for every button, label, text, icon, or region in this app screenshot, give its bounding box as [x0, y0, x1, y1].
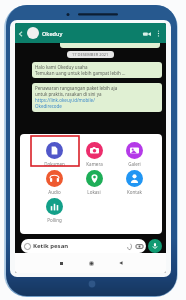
button[interactable]: Back [114, 256, 128, 270]
button[interactable]: Back [15, 28, 26, 39]
staticText: Audio [48, 189, 61, 195]
staticText: Kontak [127, 189, 142, 195]
other: Camera [136, 243, 143, 250]
button[interactable]: Audio [34, 170, 74, 195]
button[interactable]: More options [153, 28, 163, 38]
button[interactable]: Dokumen [34, 142, 74, 167]
button[interactable]: Recent apps [54, 256, 68, 270]
staticText: Penawaran rangsangan paket lebih aja unt… [35, 85, 118, 97]
staticText: https://link.okeuy.id/mobile/ Okedirecod… [35, 97, 95, 109]
button[interactable]: Video call [140, 27, 153, 40]
button[interactable]: Polling [34, 198, 74, 223]
button[interactable]: Home [84, 256, 98, 270]
button[interactable]: Kontak [114, 170, 154, 195]
button[interactable]: Kamera [74, 142, 114, 167]
staticText: Galeri [128, 161, 141, 167]
staticText: Okeduy [42, 30, 63, 37]
staticText: Ketik pesan [33, 242, 69, 250]
other: Attach [126, 243, 133, 250]
staticText: Polling [47, 217, 62, 223]
staticText: Lokasi [87, 189, 101, 195]
button[interactable]: Galeri [114, 142, 154, 167]
button[interactable]: Lokasi [74, 170, 114, 195]
staticText: Kamera [86, 161, 103, 167]
staticText: Dokumen [44, 161, 65, 167]
staticText: 17 DESEMBER 2021 [72, 52, 109, 57]
button[interactable]: Send voice message [148, 239, 162, 253]
staticText: Halo kami Okeduy usaha Temukan uang untu… [35, 64, 126, 76]
button[interactable]: Ketik pesan [24, 239, 143, 253]
